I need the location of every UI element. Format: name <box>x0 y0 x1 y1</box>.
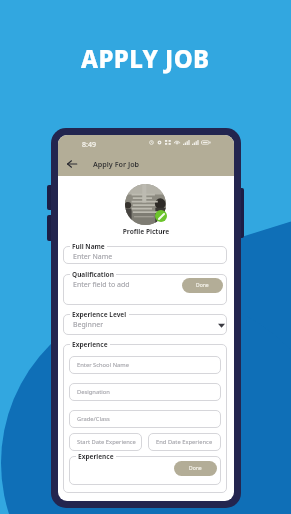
staticText: Start Date Experience <box>77 438 136 446</box>
button[interactable]: Grade/Class <box>69 410 221 428</box>
staticText: Qualification <box>72 270 114 279</box>
button[interactable]: Profile picture <box>125 184 166 225</box>
button[interactable]: Done <box>174 461 217 476</box>
staticText: Beginner <box>73 320 104 330</box>
staticText: Done <box>189 465 202 472</box>
button[interactable] <box>63 274 227 305</box>
button[interactable] <box>63 246 227 264</box>
staticText: Enter Name <box>73 252 113 262</box>
staticText: Enter field to add <box>73 280 130 290</box>
button[interactable]: Designation <box>69 383 221 401</box>
staticText: End Date Experience <box>156 438 213 446</box>
staticText: Done <box>196 282 209 289</box>
staticText: Full Name <box>72 242 105 251</box>
button[interactable]: Back <box>65 157 79 171</box>
staticText: Profile Picture <box>58 227 234 236</box>
button[interactable] <box>63 314 227 335</box>
staticText: Apply For Job <box>93 159 140 169</box>
staticText: Experience Level <box>72 310 127 319</box>
staticText: Enter School Name <box>77 361 129 369</box>
button[interactable]: Enter School Name <box>69 356 221 374</box>
button[interactable] <box>69 456 221 485</box>
staticText: Experience <box>72 340 108 349</box>
button[interactable]: Start Date Experience <box>69 433 142 451</box>
button[interactable]: Edit profile picture <box>155 210 167 222</box>
button[interactable]: Done <box>182 278 223 293</box>
staticText: Grade/Class <box>77 415 110 423</box>
button[interactable]: End Date Experience <box>148 433 221 451</box>
staticText: Experience <box>78 452 114 461</box>
staticText: 8:49 <box>82 140 96 150</box>
staticText: APPLY JOB <box>81 42 210 75</box>
staticText: Designation <box>77 388 110 396</box>
